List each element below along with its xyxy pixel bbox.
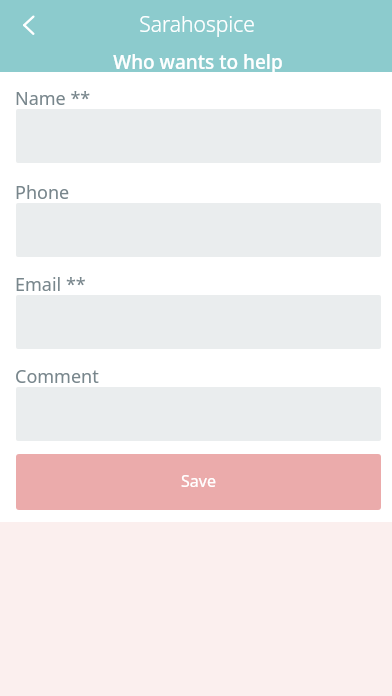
button[interactable]: Back	[8, 8, 40, 40]
staticText: Comment	[15, 364, 99, 389]
staticText: Sarahospice	[139, 10, 255, 39]
staticText: Name **	[15, 86, 91, 111]
staticText: Save	[181, 470, 216, 492]
staticText: Who wants to help	[113, 49, 283, 75]
button[interactable]: Save	[16, 454, 381, 510]
staticText: Phone	[15, 180, 70, 205]
staticText: Email **	[15, 272, 86, 297]
